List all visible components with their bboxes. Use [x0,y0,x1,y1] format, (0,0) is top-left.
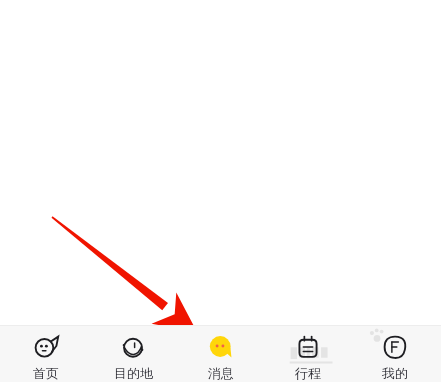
button[interactable]: Home [5,326,87,382]
button[interactable]: Trips [267,326,349,382]
staticText: 消息 [208,365,234,381]
staticText: 目的地 [114,365,153,381]
staticText: 首页 [33,365,59,381]
button[interactable]: Messages [180,326,262,382]
button[interactable]: Destination [92,326,174,382]
staticText: 行程 [295,365,321,381]
button[interactable]: Profile [354,326,436,382]
staticText: 我的 [382,365,408,381]
